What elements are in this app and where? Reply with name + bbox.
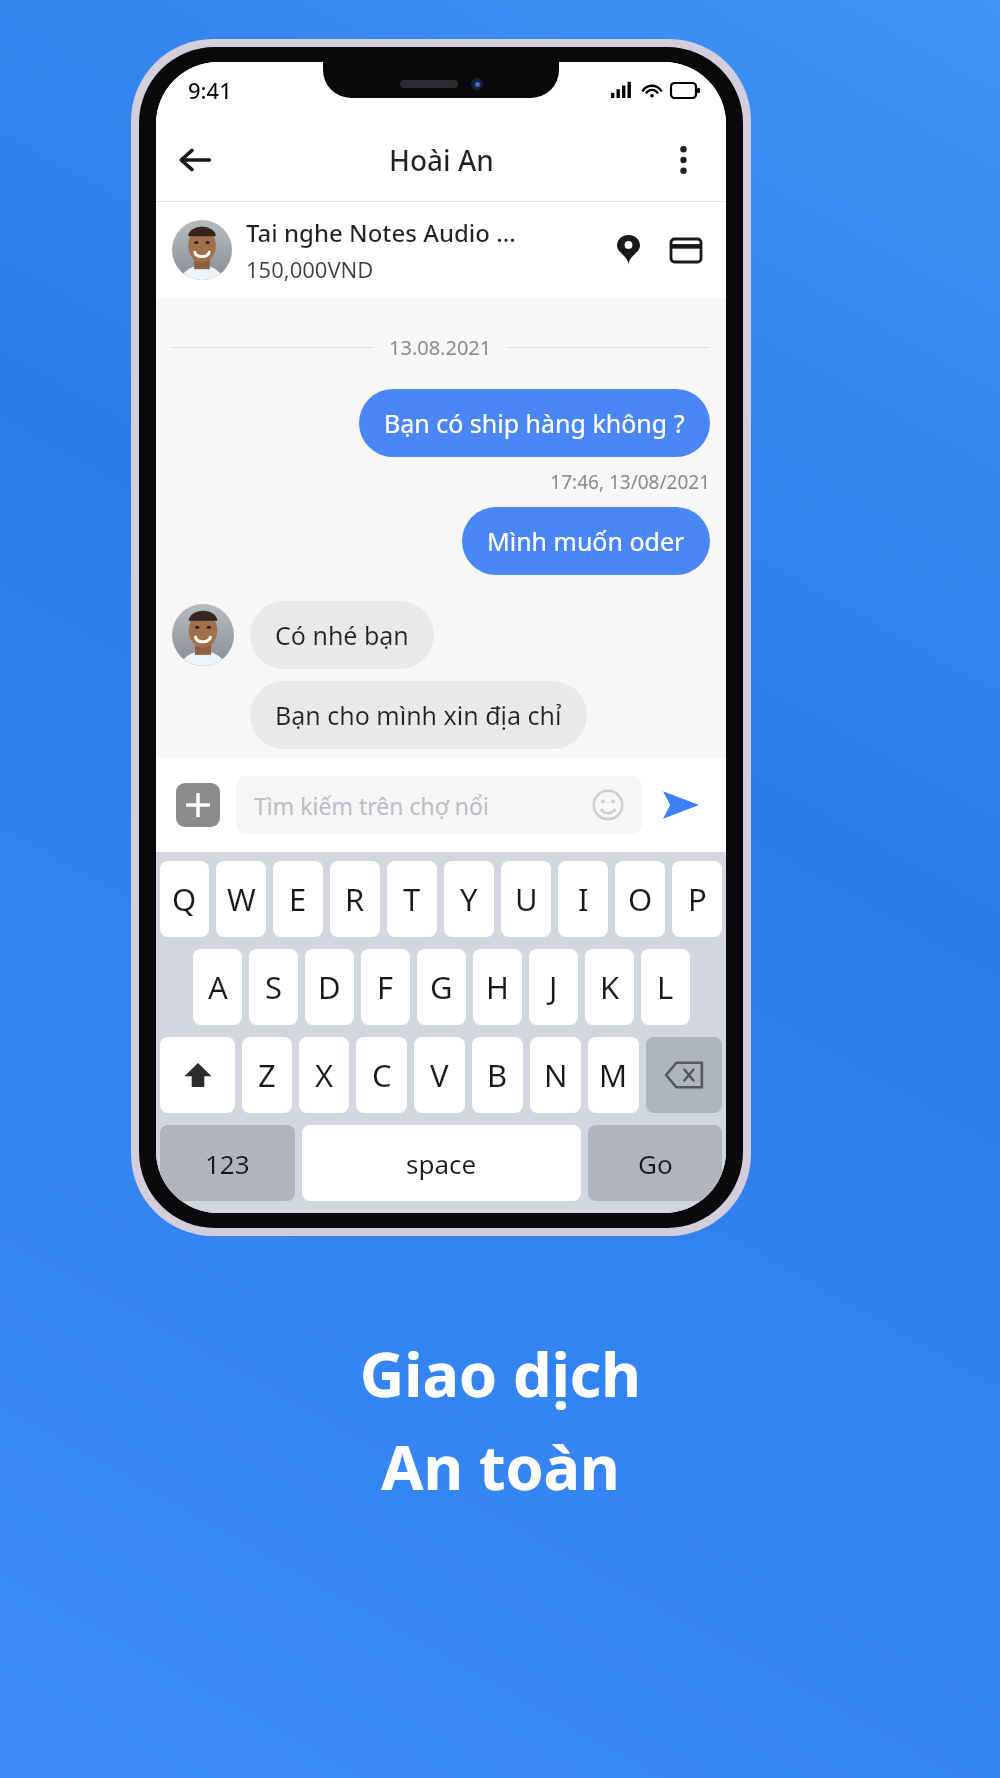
- button[interactable]: O: [615, 861, 665, 937]
- staticText: Q: [172, 878, 197, 920]
- button[interactable]: K: [585, 949, 634, 1025]
- staticText: Tìm kiếm trên chợ nổi: [254, 790, 592, 821]
- button[interactable]: Send: [656, 780, 706, 830]
- staticText: G: [430, 966, 453, 1008]
- button[interactable]: M: [588, 1037, 639, 1113]
- staticText: C: [372, 1054, 392, 1096]
- button[interactable]: I: [558, 861, 608, 937]
- button[interactable]: Y: [444, 861, 494, 937]
- staticText: J: [549, 966, 558, 1008]
- button[interactable]: N: [530, 1037, 581, 1113]
- button[interactable]: Location: [604, 226, 652, 274]
- staticText: O: [628, 878, 653, 920]
- button[interactable]: Bạn cho mình xin địa chỉ: [250, 681, 587, 749]
- staticText: 150,000VND: [246, 254, 374, 284]
- staticText: Mình muốn oder: [487, 524, 685, 558]
- staticText: F: [377, 966, 394, 1008]
- button[interactable]: Shift: [160, 1037, 235, 1113]
- button[interactable]: X: [299, 1037, 349, 1113]
- button[interactable]: More options: [658, 135, 708, 185]
- button[interactable]: space: [302, 1125, 581, 1201]
- staticText: S: [265, 966, 283, 1008]
- button[interactable]: 123: [160, 1125, 295, 1201]
- button[interactable]: R: [330, 861, 380, 937]
- button[interactable]: Có nhé bạn: [250, 601, 434, 669]
- staticText: T: [403, 878, 421, 920]
- button[interactable]: J: [529, 949, 578, 1025]
- button[interactable]: U: [501, 861, 551, 937]
- staticText: Z: [258, 1054, 276, 1096]
- staticText: N: [544, 1054, 568, 1096]
- staticText: U: [515, 878, 538, 920]
- staticText: 17:46, 13/08/2021: [172, 469, 710, 495]
- button[interactable]: Backspace: [646, 1037, 722, 1113]
- staticText: X: [315, 1054, 334, 1096]
- staticText: H: [486, 966, 509, 1008]
- staticText: B: [487, 1054, 508, 1096]
- button[interactable]: Tìm kiếm trên chợ nổi: [236, 776, 642, 834]
- staticText: 123: [205, 1146, 250, 1181]
- staticText: Tai nghe Notes Audio ...: [246, 216, 516, 249]
- staticText: Giao dịch: [360, 1332, 641, 1415]
- staticText: Bạn có ship hàng không ?: [384, 406, 685, 440]
- staticText: A: [208, 966, 228, 1008]
- staticText: Go: [638, 1146, 673, 1181]
- button[interactable]: Go: [588, 1125, 722, 1201]
- button[interactable]: Q: [160, 861, 209, 937]
- button[interactable]: V: [414, 1037, 465, 1113]
- staticText: V: [430, 1054, 449, 1096]
- button[interactable]: H: [473, 949, 522, 1025]
- staticText: E: [289, 878, 307, 920]
- staticText: space: [406, 1146, 477, 1181]
- staticText: W: [227, 878, 256, 920]
- staticText: An toàn: [381, 1425, 620, 1508]
- button[interactable]: G: [417, 949, 466, 1025]
- button[interactable]: Back: [168, 133, 222, 187]
- staticText: Y: [460, 878, 478, 920]
- staticText: P: [688, 878, 707, 920]
- button[interactable]: Payment: [662, 226, 710, 274]
- button[interactable]: A: [193, 949, 242, 1025]
- button[interactable]: L: [641, 949, 690, 1025]
- button[interactable]: D: [305, 949, 354, 1025]
- button[interactable]: Bạn có ship hàng không ?: [359, 389, 710, 457]
- button[interactable]: W: [216, 861, 266, 937]
- button[interactable]: C: [356, 1037, 407, 1113]
- button[interactable]: S: [249, 949, 298, 1025]
- staticText: K: [600, 966, 620, 1008]
- staticText: 9:41: [188, 75, 232, 105]
- staticText: Có nhé bạn: [275, 618, 409, 652]
- button[interactable]: B: [472, 1037, 523, 1113]
- button[interactable]: F: [361, 949, 410, 1025]
- staticText: R: [345, 878, 365, 920]
- staticText: Bạn cho mình xin địa chỉ: [275, 698, 562, 732]
- button[interactable]: P: [672, 861, 722, 937]
- staticText: L: [657, 966, 674, 1008]
- button[interactable]: Z: [242, 1037, 292, 1113]
- staticText: Hoài An: [389, 141, 494, 179]
- button[interactable]: E: [273, 861, 323, 937]
- button[interactable]: T: [387, 861, 437, 937]
- button[interactable]: Tai nghe Notes Audio ...: [156, 202, 726, 298]
- button[interactable]: Add attachment: [176, 783, 220, 827]
- staticText: 13.08.2021: [389, 334, 492, 361]
- staticText: I: [578, 878, 589, 920]
- staticText: D: [318, 966, 341, 1008]
- staticText: M: [599, 1054, 628, 1096]
- button[interactable]: Mình muốn oder: [462, 507, 710, 575]
